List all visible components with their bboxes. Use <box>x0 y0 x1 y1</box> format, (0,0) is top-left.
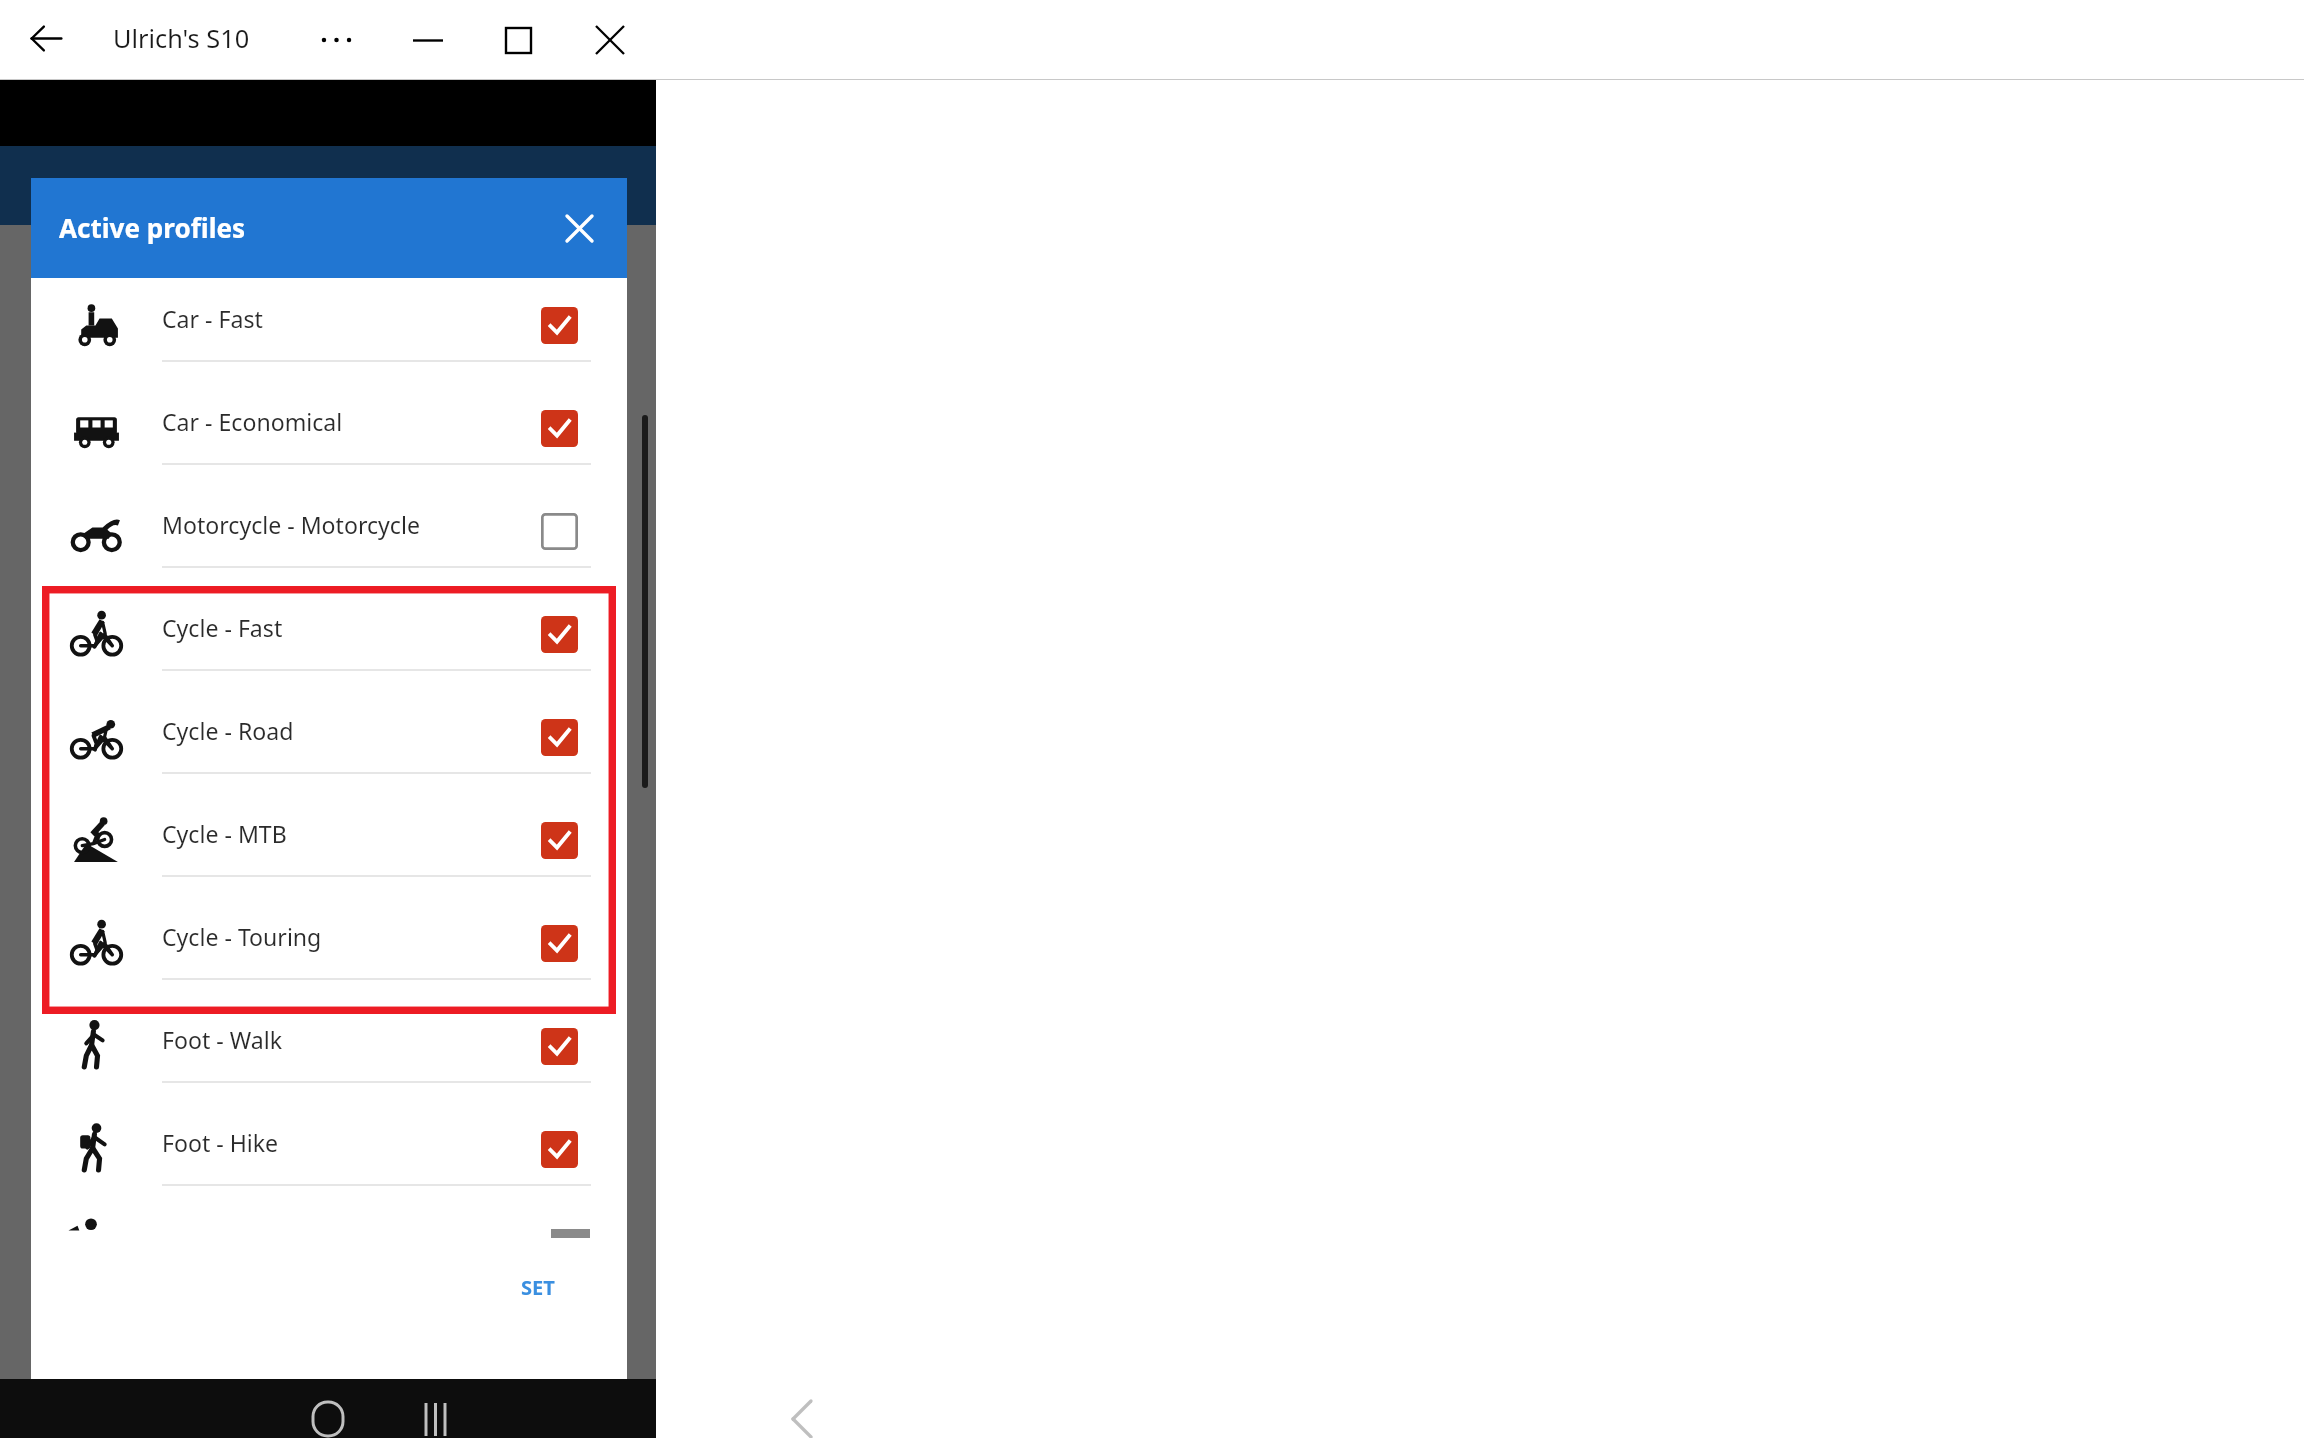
button[interactable]: Cycle - Touring <box>31 896 627 999</box>
button[interactable]: Cycle - Fast <box>31 587 627 690</box>
button[interactable]: Close <box>578 10 641 70</box>
staticText: Motorcycle - Motorcycle <box>162 509 420 540</box>
button[interactable]: Foot - Walk <box>31 999 627 1102</box>
staticText: Car - Fast <box>162 303 263 334</box>
button[interactable]: Foot - Walk toggle <box>528 1015 591 1078</box>
button[interactable]: SET <box>509 1264 567 1309</box>
staticText: Cycle - Fast <box>162 612 283 643</box>
button[interactable]: Recents <box>107 1379 763 1438</box>
staticText: Active profiles <box>59 210 246 246</box>
button[interactable]: Minimize <box>396 10 459 70</box>
button[interactable]: Motorcycle - Motorcycle toggle <box>528 500 591 563</box>
button[interactable]: Cycle - Touring toggle <box>528 912 591 975</box>
button[interactable]: More options <box>306 10 366 70</box>
staticText: Ulrich's S10 <box>113 21 250 56</box>
button[interactable]: Motorcycle - Motorcycle <box>31 484 627 587</box>
button[interactable]: Cycle - Road <box>31 690 627 793</box>
staticText: Car - Economical <box>162 406 343 437</box>
staticText: SET <box>521 1273 555 1300</box>
button[interactable]: Car - Fast <box>31 278 627 381</box>
button[interactable]: Cycle - MTB toggle <box>528 809 591 872</box>
button[interactable]: Close dialog <box>549 198 609 258</box>
staticText: Foot - Hike <box>162 1127 279 1158</box>
staticText: Foot - Walk <box>162 1024 282 1055</box>
button[interactable]: Car - Fast toggle <box>528 294 591 357</box>
button[interactable]: Car - Economical <box>31 381 627 484</box>
button[interactable]: Cycle - Fast toggle <box>528 603 591 666</box>
button[interactable]: Foot - Hike toggle <box>528 1118 591 1181</box>
button[interactable]: Back <box>15 7 78 70</box>
button[interactable]: Back <box>474 1379 1130 1438</box>
staticText: Cycle - Touring <box>162 921 322 952</box>
button[interactable]: Car - Economical toggle <box>528 397 591 460</box>
button[interactable]: Cycle - Road toggle <box>528 706 591 769</box>
button[interactable]: Cycle - MTB <box>31 793 627 896</box>
button[interactable]: Maximize <box>487 10 550 70</box>
button[interactable]: Foot - Hike <box>31 1102 627 1205</box>
staticText: Cycle - Road <box>162 715 294 746</box>
button[interactable]: Home <box>0 1379 656 1438</box>
staticText: Cycle - MTB <box>162 818 287 849</box>
